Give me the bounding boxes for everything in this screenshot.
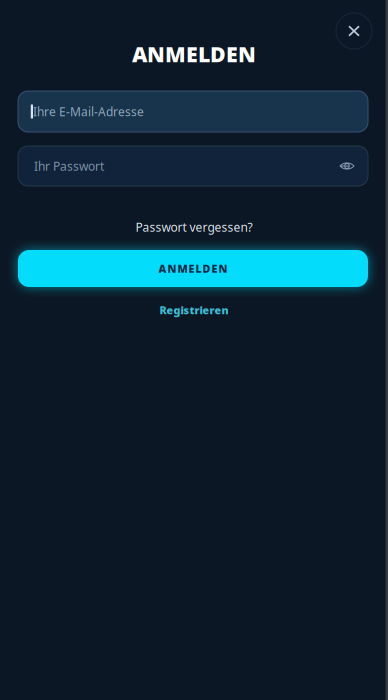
staticText: Registrieren: [159, 303, 228, 317]
button[interactable]: Close: [332, 9, 376, 53]
staticText: Ihre E-Mail-Adresse: [33, 103, 144, 119]
button[interactable]: A N M E L D E N: [18, 250, 368, 287]
button[interactable]: Registrieren: [0, 300, 388, 320]
staticText: ANMELDEN: [132, 40, 256, 68]
staticText: Ihr Passwort: [34, 158, 104, 174]
staticText: A N M E L D E N: [158, 261, 227, 276]
button[interactable]: Show password: [332, 151, 362, 181]
staticText: Passwort vergessen?: [135, 219, 252, 235]
button[interactable]: Passwort vergessen?: [0, 216, 388, 238]
